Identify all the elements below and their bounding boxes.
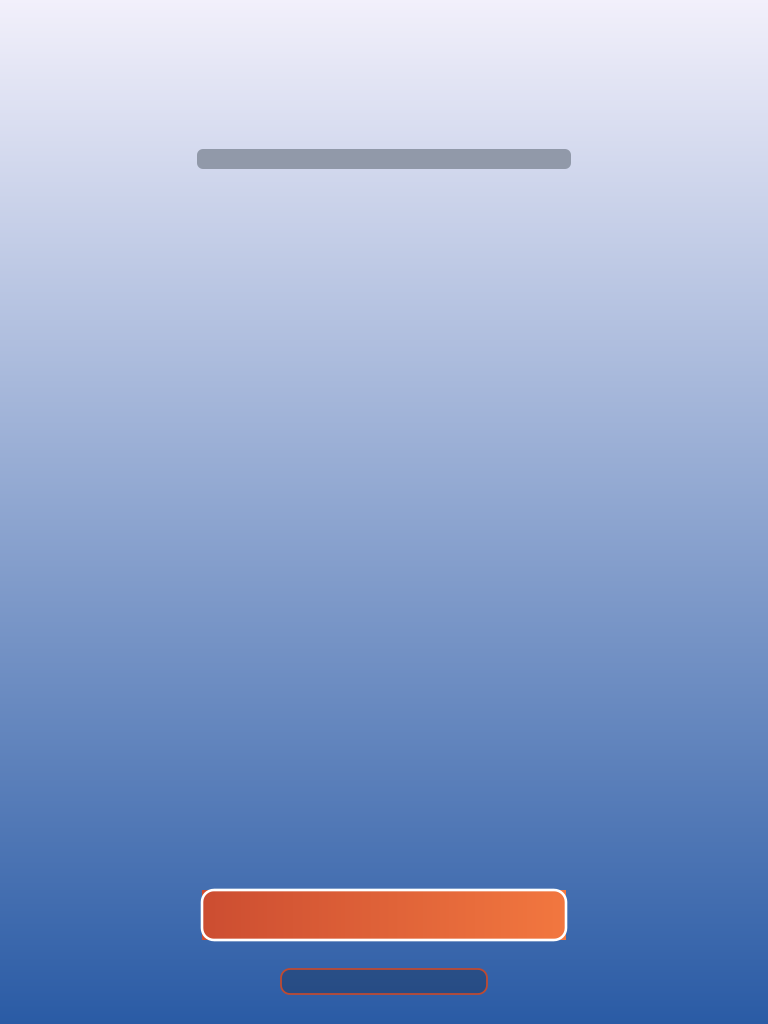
button[interactable]: Learn more bbox=[281, 969, 487, 994]
button[interactable]: Get started bbox=[202, 890, 566, 940]
